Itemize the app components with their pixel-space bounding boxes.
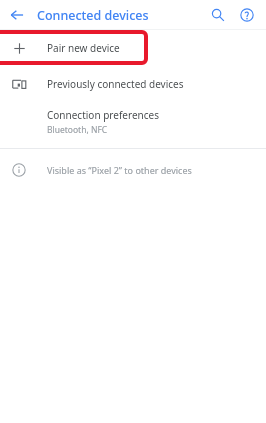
button[interactable]: Back	[6, 4, 28, 26]
staticText: Previously connected devices	[47, 77, 184, 91]
staticText: Connection preferences	[47, 108, 159, 122]
staticText: Bluetooth, NFC	[47, 124, 108, 136]
button[interactable]: Connection preferences	[0, 102, 266, 142]
button[interactable]: Previously connected devices	[0, 66, 266, 102]
staticText: Pair new device	[47, 41, 120, 55]
staticText: Visible as “Pixel 2” to other devices	[47, 164, 192, 176]
staticText: Connected devices	[37, 7, 149, 24]
button[interactable]: Help	[234, 2, 260, 28]
button[interactable]: Visible as “Pixel 2” to other devices	[0, 149, 266, 191]
button[interactable]: Pair new device	[0, 30, 266, 66]
button[interactable]: Search	[205, 2, 231, 28]
